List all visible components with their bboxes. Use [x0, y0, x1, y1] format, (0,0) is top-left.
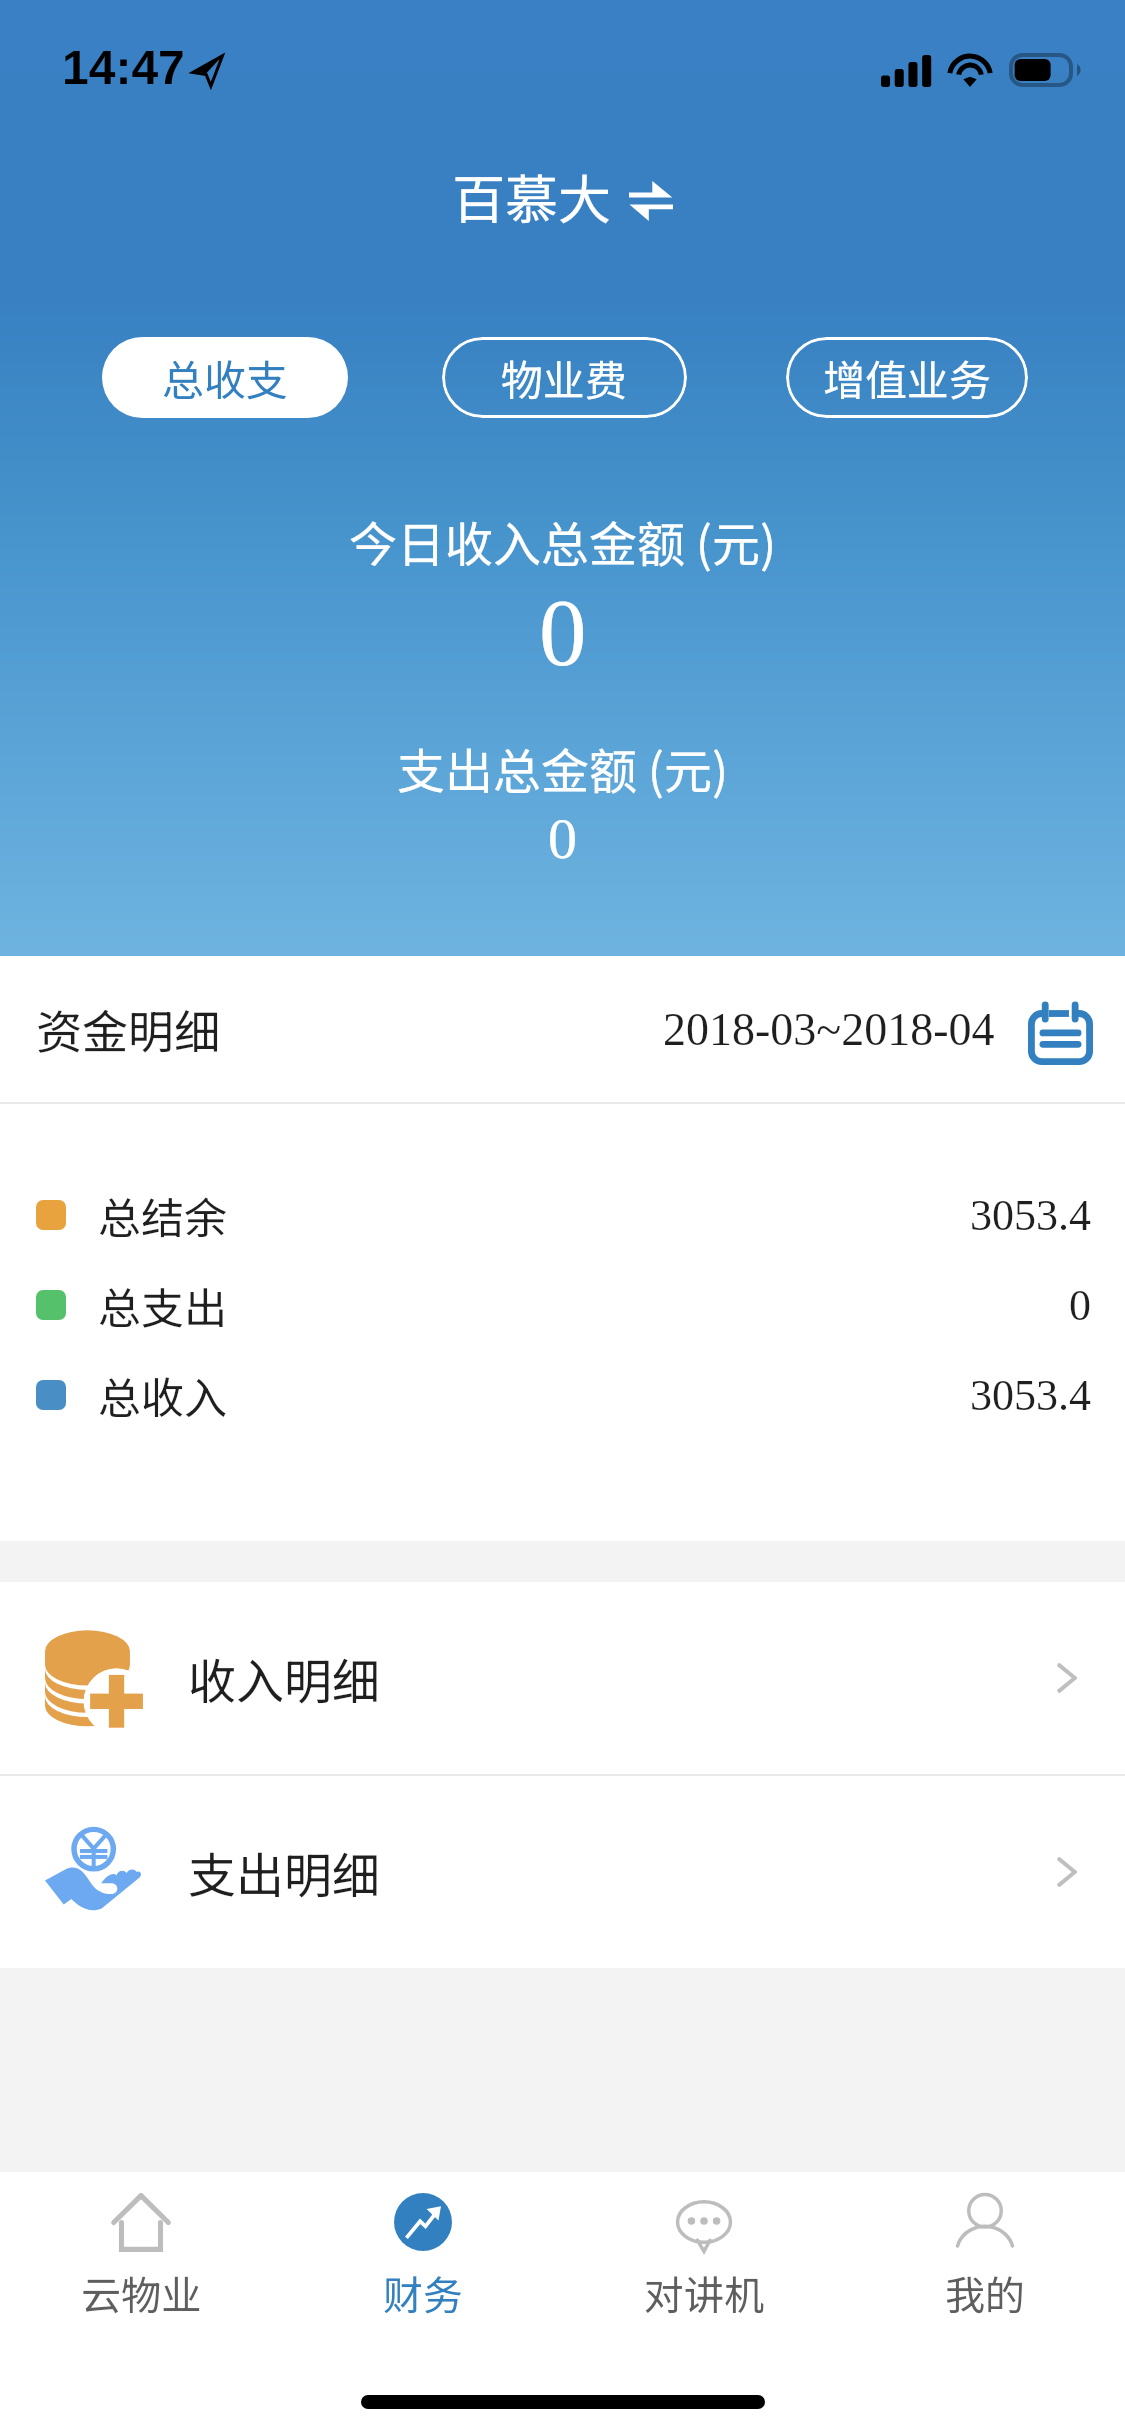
staticText: 增值业务 — [823, 347, 992, 408]
staticText: 支出总金额 (元) — [397, 733, 729, 803]
staticText: 0 — [548, 806, 577, 870]
button[interactable]: Mine — [844, 2172, 1125, 2332]
staticText: 3053.4 — [970, 1371, 1091, 1420]
staticText: 云物业 — [81, 2264, 201, 2322]
other: Intercom — [674, 2193, 734, 2252]
staticText: 支出明细 — [188, 1837, 381, 1907]
staticText: 资金明细 — [36, 996, 220, 1063]
other: Switch community — [629, 181, 673, 221]
button[interactable]: Cloud property — [0, 2172, 282, 2332]
button[interactable]: 总收支 — [102, 337, 348, 418]
button[interactable]: 百慕大 — [452, 158, 673, 235]
button[interactable]: 收入明细 — [0, 1582, 1125, 1774]
button[interactable]: 财务 — [282, 2172, 563, 2332]
staticText: 总支出 — [98, 1274, 227, 1336]
other: Choose date range — [1028, 1005, 1093, 1065]
staticText: 3053.4 — [970, 1191, 1091, 1240]
staticText: 今日收入总金额 (元) — [349, 506, 777, 576]
staticText: 0 — [539, 580, 587, 685]
staticText: 物业费 — [501, 347, 628, 408]
staticText: 财务 — [383, 2264, 463, 2322]
other: Location — [190, 53, 226, 89]
staticText: 2018-03~2018-04 — [663, 1004, 995, 1055]
staticText: 对讲机 — [644, 2264, 764, 2322]
staticText: 总收入 — [98, 1364, 227, 1426]
staticText: 收入明细 — [188, 1643, 381, 1713]
staticText: 我的 — [945, 2264, 1025, 2322]
staticText: 0 — [1069, 1281, 1091, 1330]
button[interactable]: Intercom — [563, 2172, 844, 2332]
staticText: 百慕大 — [452, 158, 611, 235]
button[interactable]: 增值业务 — [786, 337, 1028, 418]
staticText: 14:47 — [62, 41, 185, 95]
button[interactable]: 支出明细 — [0, 1776, 1125, 1968]
button[interactable]: 物业费 — [442, 337, 687, 418]
button[interactable]: 资金明细 — [0, 956, 1125, 1102]
other: Mine — [955, 2193, 1015, 2252]
staticText: 总收支 — [162, 347, 289, 408]
other: Cloud property — [111, 2193, 171, 2252]
staticText: 总结余 — [98, 1184, 227, 1246]
